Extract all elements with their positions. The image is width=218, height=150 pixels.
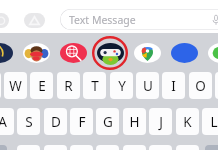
button[interactable]: Delete bbox=[205, 145, 218, 150]
button[interactable]: D bbox=[44, 108, 67, 135]
staticText: Y bbox=[118, 77, 126, 95]
button[interactable]: Memoji Stickers bbox=[23, 43, 50, 63]
button[interactable]: F bbox=[70, 108, 93, 135]
button[interactable]: WhatsApp bbox=[208, 43, 218, 63]
button[interactable]: Shift bbox=[0, 145, 7, 150]
button[interactable]: J bbox=[149, 108, 172, 135]
button[interactable]: Zoom bbox=[171, 43, 198, 63]
staticText: K bbox=[183, 113, 192, 131]
button[interactable]: Apps bbox=[24, 13, 45, 28]
button[interactable]: G bbox=[96, 108, 119, 135]
button[interactable]: Images bbox=[60, 43, 87, 63]
staticText: U bbox=[143, 77, 153, 95]
staticText: H bbox=[129, 113, 140, 131]
button[interactable]: U bbox=[136, 72, 159, 99]
staticText: O bbox=[195, 77, 206, 95]
button[interactable]: Camera bbox=[0, 13, 9, 28]
button[interactable]: Q bbox=[0, 72, 1, 99]
button[interactable]: Y bbox=[110, 72, 133, 99]
button[interactable]: E bbox=[30, 72, 53, 99]
button[interactable]: P bbox=[215, 72, 218, 99]
staticText: F bbox=[78, 113, 86, 131]
staticText: D bbox=[51, 113, 61, 131]
button[interactable]: Dictate bbox=[210, 14, 218, 26]
button[interactable]: Z bbox=[17, 145, 40, 150]
button[interactable]: L bbox=[202, 108, 218, 135]
staticText: T bbox=[91, 77, 99, 95]
button[interactable]: K bbox=[176, 108, 199, 135]
staticText: Text Message bbox=[69, 13, 136, 27]
button[interactable]: O bbox=[189, 72, 212, 99]
button[interactable]: Game Pigeon bbox=[97, 43, 124, 63]
button[interactable]: W bbox=[4, 72, 27, 99]
staticText: I bbox=[171, 77, 176, 95]
staticText: S bbox=[25, 113, 33, 131]
button[interactable]: Memoji bbox=[0, 43, 13, 63]
button[interactable]: H bbox=[123, 108, 146, 135]
staticText: W bbox=[9, 77, 22, 95]
button[interactable]: B bbox=[123, 145, 146, 150]
button[interactable]: I bbox=[162, 72, 185, 99]
staticText: G bbox=[103, 113, 113, 131]
button[interactable]: V bbox=[96, 145, 119, 150]
staticText: J bbox=[159, 113, 163, 131]
button[interactable]: C bbox=[70, 145, 93, 150]
button[interactable]: N bbox=[149, 145, 172, 150]
staticText: A bbox=[0, 113, 7, 131]
button[interactable]: R bbox=[57, 72, 80, 99]
staticText: L bbox=[210, 113, 218, 131]
staticText: R bbox=[64, 77, 73, 95]
button[interactable]: S bbox=[17, 108, 40, 135]
button[interactable]: X bbox=[44, 145, 67, 150]
button[interactable]: Google Maps bbox=[134, 43, 161, 63]
button[interactable]: T bbox=[83, 72, 106, 99]
button[interactable]: Text Message bbox=[60, 9, 218, 30]
button[interactable]: M bbox=[176, 145, 199, 150]
button[interactable]: A bbox=[0, 108, 14, 135]
staticText: E bbox=[38, 77, 46, 95]
